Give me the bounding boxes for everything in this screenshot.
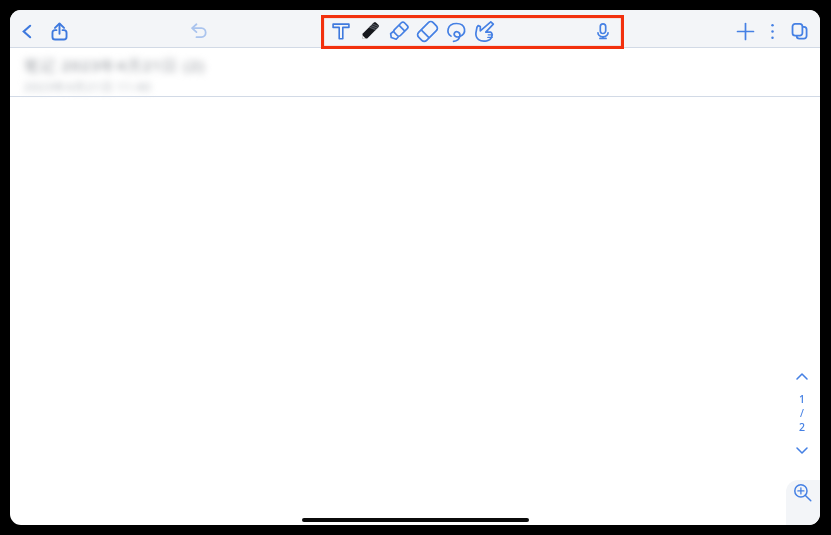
button[interactable]: Text tool [327, 17, 355, 45]
button[interactable]: 笔记 2023年4月21日 (2) [10, 48, 820, 97]
button[interactable]: Next page [788, 439, 816, 461]
button[interactable]: Pen tool [356, 17, 384, 45]
button[interactable]: Voice input [589, 17, 617, 45]
button[interactable]: Previous page [788, 365, 816, 387]
button[interactable]: Eraser [413, 17, 441, 45]
button[interactable]: Share [45, 17, 73, 45]
button[interactable]: Add [731, 17, 759, 45]
staticText: 笔记 2023年4月21日 (2) [24, 55, 206, 75]
staticText: 2 [799, 420, 806, 434]
button[interactable]: Undo [185, 17, 213, 45]
button[interactable]: Back [13, 17, 41, 45]
button[interactable]: Zoom in [786, 480, 820, 525]
button[interactable]: Pages [786, 17, 814, 45]
button[interactable]: Lasso select [442, 17, 470, 45]
staticText: 1 [799, 392, 806, 406]
staticText: / [800, 406, 804, 420]
button[interactable]: More options [758, 17, 786, 45]
button[interactable]: Hand tool [470, 17, 498, 45]
button[interactable]: Highlighter [385, 17, 413, 45]
staticText: 2023年4月21日 11:40 [24, 79, 152, 95]
